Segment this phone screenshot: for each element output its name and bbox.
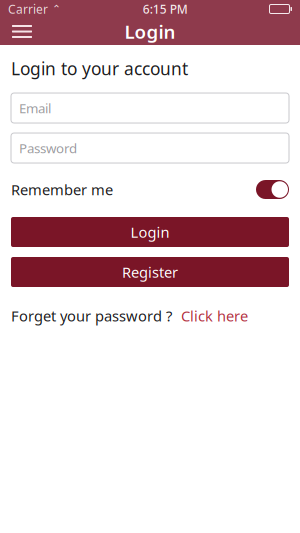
staticText: Login to your account (11, 57, 188, 80)
button[interactable]: Menu (0, 18, 44, 45)
button[interactable]: Click here (172, 306, 248, 325)
staticText: Email (19, 99, 51, 117)
staticText: Register (122, 262, 178, 282)
button[interactable]: Remember me (256, 180, 289, 199)
staticText: Remember me (11, 180, 113, 199)
staticText: ⌃ (52, 3, 61, 15)
staticText: 6:15 PM (143, 1, 188, 17)
staticText: Password (19, 139, 77, 157)
button[interactable]: Register (11, 257, 289, 287)
staticText: Login (124, 19, 175, 44)
staticText: Carrier (8, 1, 48, 17)
button[interactable]: Login (11, 217, 289, 247)
staticText: Login (130, 222, 169, 242)
staticText: Click here (181, 306, 248, 325)
staticText: Forget your password ? (11, 306, 172, 325)
